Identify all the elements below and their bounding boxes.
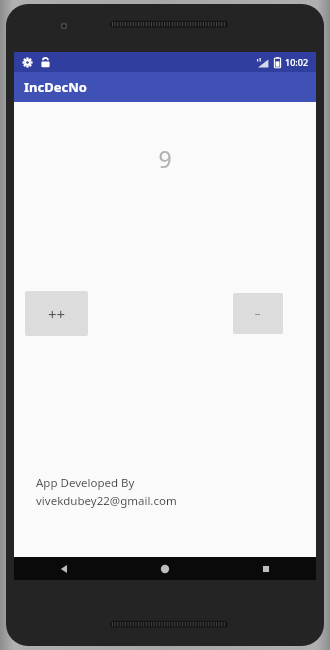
button[interactable]: Recent apps bbox=[215, 557, 316, 580]
staticText: -- bbox=[255, 308, 261, 319]
staticText: App Developed By bbox=[36, 475, 135, 491]
button[interactable]: Home bbox=[114, 557, 215, 580]
staticText: 9 bbox=[158, 143, 172, 174]
button[interactable]: ++ bbox=[25, 291, 88, 336]
staticText: vivekdubey22@gmail.com bbox=[36, 493, 177, 509]
staticText: IncDecNo bbox=[24, 78, 87, 96]
button[interactable]: -- bbox=[233, 293, 283, 334]
staticText: ++ bbox=[48, 304, 66, 324]
staticText: 10:02 bbox=[285, 56, 309, 68]
button[interactable]: Back bbox=[14, 557, 114, 580]
